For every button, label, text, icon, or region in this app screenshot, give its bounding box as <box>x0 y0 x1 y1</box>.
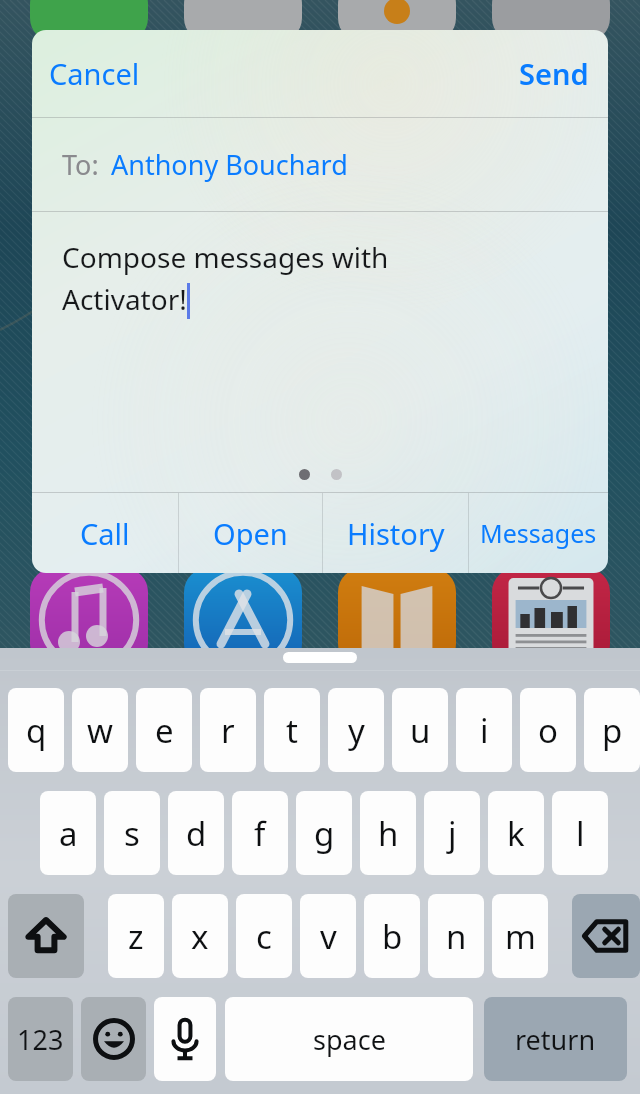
staticText: x <box>191 914 209 959</box>
staticText: b <box>382 914 403 959</box>
button[interactable]: Messages <box>469 493 608 573</box>
staticText: w <box>87 708 113 753</box>
staticText: m <box>505 914 536 959</box>
button[interactable]: Shift <box>8 894 84 978</box>
staticText: k <box>507 811 525 856</box>
button[interactable]: e <box>136 688 192 772</box>
staticText: Open <box>213 514 288 553</box>
button[interactable]: u <box>392 688 448 772</box>
staticText: Cancel <box>49 54 140 93</box>
button[interactable]: h <box>360 791 416 875</box>
button[interactable]: p <box>584 688 640 772</box>
button[interactable]: Send <box>515 48 593 99</box>
staticText: p <box>602 708 623 753</box>
button[interactable]: z <box>108 894 164 978</box>
button[interactable]: r <box>200 688 256 772</box>
button[interactable]: j <box>424 791 480 875</box>
staticText: z <box>128 914 144 959</box>
staticText: space <box>313 1021 386 1058</box>
staticText: n <box>446 914 467 959</box>
staticText: Messages <box>480 516 597 550</box>
staticText: f <box>254 811 266 856</box>
button[interactable]: Backspace <box>572 894 640 978</box>
button[interactable]: f <box>232 791 288 875</box>
button[interactable]: s <box>104 791 160 875</box>
staticText: Anthony Bouchard <box>111 146 348 183</box>
button[interactable]: return <box>484 997 627 1081</box>
button[interactable]: Emoji <box>81 997 146 1081</box>
staticText: 123 <box>17 1021 64 1058</box>
button[interactable]: l <box>552 791 608 875</box>
staticText: h <box>378 811 399 856</box>
button[interactable]: k <box>488 791 544 875</box>
button[interactable]: 123 <box>8 997 73 1081</box>
staticText: Activator! <box>62 280 187 318</box>
button[interactable]: space <box>225 997 473 1081</box>
staticText: return <box>515 1021 596 1058</box>
button[interactable]: c <box>236 894 292 978</box>
button[interactable]: m <box>492 894 548 978</box>
button[interactable]: Call <box>32 493 178 573</box>
staticText: o <box>538 708 558 753</box>
staticText: l <box>576 811 585 856</box>
button[interactable]: Keyboard handle <box>283 652 357 663</box>
button[interactable]: To: <box>32 118 608 211</box>
button[interactable]: a <box>40 791 96 875</box>
staticText: q <box>26 708 47 753</box>
button[interactable]: w <box>72 688 128 772</box>
staticText: c <box>256 914 272 959</box>
staticText: i <box>480 708 489 753</box>
staticText: t <box>286 708 298 753</box>
staticText: g <box>314 811 335 856</box>
button[interactable]: Open <box>179 493 322 573</box>
staticText: s <box>124 811 140 856</box>
staticText: Compose messages with <box>62 238 389 276</box>
button[interactable]: n <box>428 894 484 978</box>
staticText: j <box>448 811 457 856</box>
button[interactable]: q <box>8 688 64 772</box>
button[interactable]: y <box>328 688 384 772</box>
button[interactable]: History <box>323 493 468 573</box>
button[interactable]: Dictation <box>154 997 216 1081</box>
button[interactable]: g <box>296 791 352 875</box>
staticText: d <box>186 811 207 856</box>
staticText: r <box>221 708 235 753</box>
staticText: To: <box>62 146 99 183</box>
staticText: y <box>348 708 365 753</box>
staticText: v <box>320 914 337 959</box>
button[interactable]: b <box>364 894 420 978</box>
staticText: a <box>59 811 78 856</box>
button[interactable]: o <box>520 688 576 772</box>
staticText: Send <box>519 54 589 93</box>
button[interactable]: Cancel <box>45 48 144 99</box>
button[interactable]: x <box>172 894 228 978</box>
button[interactable]: t <box>264 688 320 772</box>
staticText: u <box>410 708 431 753</box>
button[interactable]: v <box>300 894 356 978</box>
staticText: e <box>155 708 174 753</box>
button[interactable]: i <box>456 688 512 772</box>
staticText: Call <box>80 514 130 553</box>
button[interactable]: d <box>168 791 224 875</box>
button[interactable]: Compose messages with <box>32 212 608 492</box>
staticText: History <box>347 514 445 553</box>
